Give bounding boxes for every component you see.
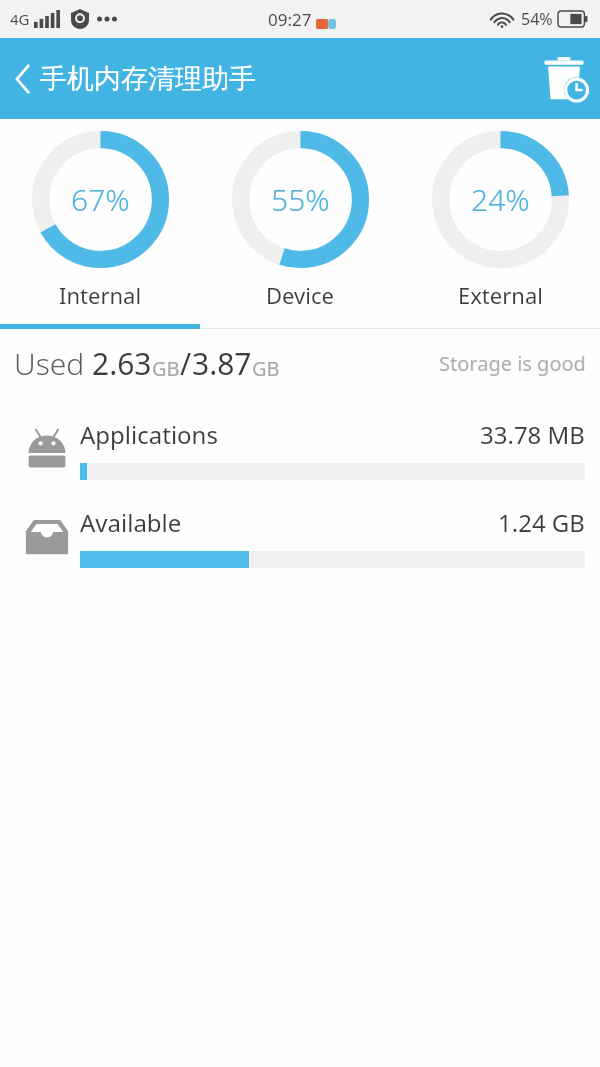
staticText: Device [266, 280, 334, 310]
button[interactable]: 24% [400, 119, 600, 310]
staticText: GB [252, 355, 280, 382]
staticText: 3.87 [192, 343, 252, 384]
staticText: Internal [59, 280, 142, 310]
staticText: 2.63 [92, 343, 152, 384]
staticText: External [458, 280, 543, 310]
staticText: Available [80, 506, 182, 539]
staticText: Storage is good [439, 350, 586, 377]
staticText: GB [152, 355, 180, 382]
staticText: / [180, 343, 192, 384]
staticText: Used [14, 343, 92, 384]
staticText: 55% [271, 179, 330, 220]
staticText: 24% [471, 179, 530, 220]
button[interactable]: 55% [200, 119, 400, 310]
staticText: 09:27 [268, 8, 312, 31]
staticText: 手机内存清理助手 [40, 62, 256, 96]
button[interactable]: Applications [0, 413, 600, 485]
button[interactable]: Available [0, 501, 600, 573]
button[interactable]: 67% [0, 119, 200, 310]
staticText: 33.78 MB [480, 418, 585, 451]
staticText: Applications [80, 418, 218, 451]
staticText: 67% [71, 179, 130, 220]
button[interactable]: Clear history [528, 38, 600, 119]
button[interactable]: Back [0, 38, 46, 119]
staticText: 1.24 GB [498, 506, 585, 539]
staticText: 54% [521, 8, 553, 30]
staticText: 4G [10, 9, 30, 29]
